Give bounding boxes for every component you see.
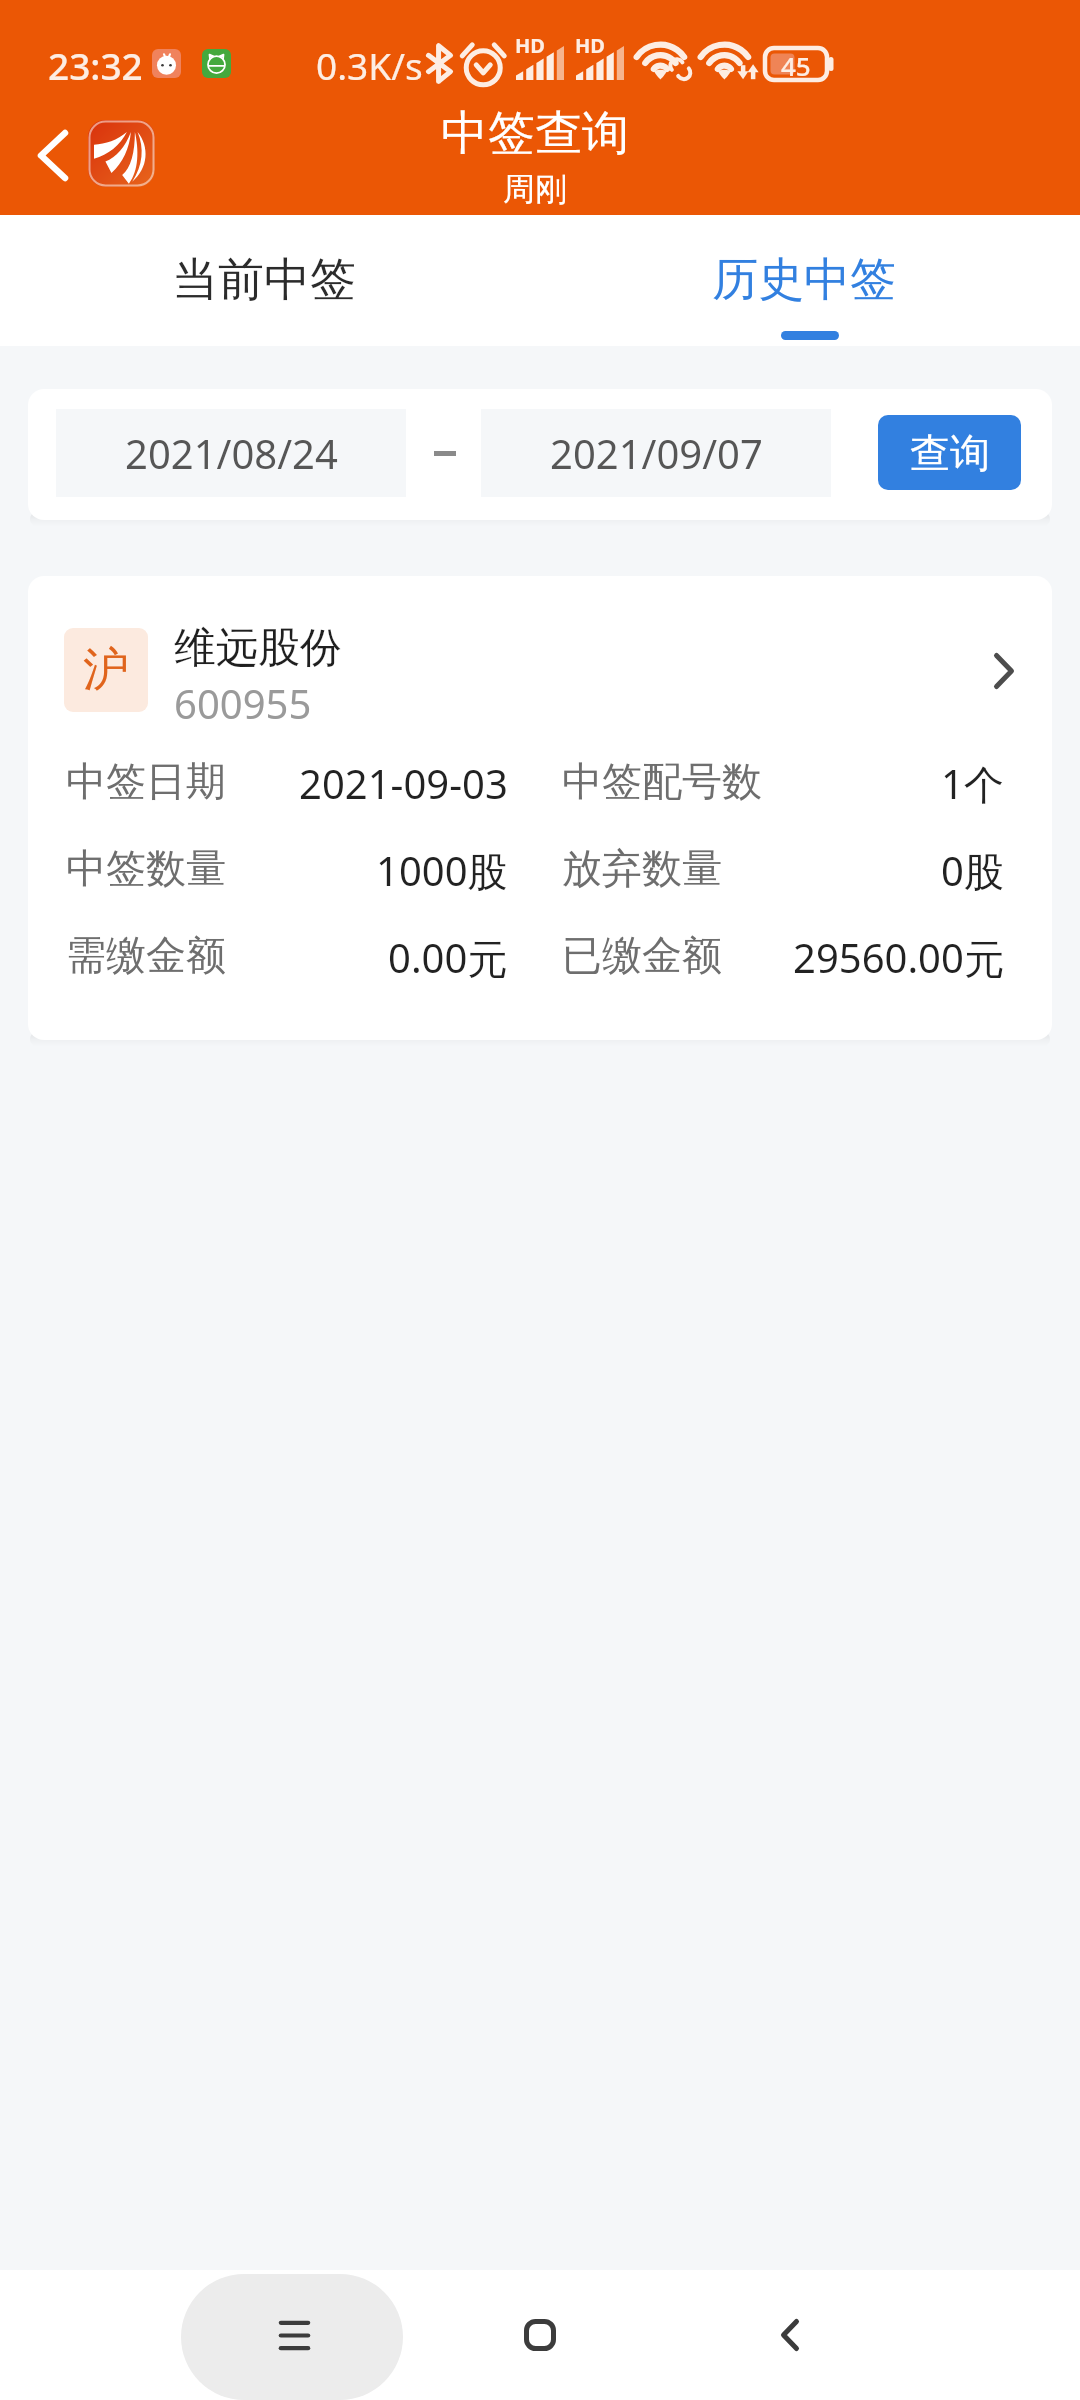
button[interactable]: App logo [88, 120, 155, 187]
button[interactable]: Home [440, 2270, 640, 2400]
staticText: 0.00元 [388, 930, 508, 980]
staticText: HD [575, 32, 605, 59]
staticText: HD [515, 32, 545, 59]
staticText: 中签日期 [66, 756, 226, 806]
staticText: 放弃数量 [562, 843, 722, 893]
button[interactable]: Back [12, 115, 92, 195]
staticText: 历史中签 [712, 251, 896, 309]
staticText: 中签配号数 [562, 756, 762, 806]
staticText: 29560.00元 [793, 930, 1004, 980]
staticText: 周刚 [503, 169, 567, 209]
button[interactable]: 2021/08/24 [56, 409, 406, 497]
staticText: 0.3K/s [316, 40, 423, 90]
staticText: 1个 [941, 756, 1004, 806]
staticText: 23:32 [48, 40, 143, 90]
button[interactable]: 沪 [28, 576, 1052, 1040]
button[interactable]: 历史中签 [540, 215, 1080, 346]
staticText: 中签数量 [66, 843, 226, 893]
staticText: 45 [781, 48, 811, 80]
button[interactable]: Recents [181, 2270, 403, 2400]
staticText: 查询 [910, 428, 990, 478]
staticText: 已缴金额 [562, 930, 722, 980]
staticText: 维远股份 [174, 622, 342, 675]
button[interactable]: 2021/09/07 [481, 409, 831, 497]
staticText: 需缴金额 [66, 930, 226, 980]
button[interactable]: 查询 [878, 415, 1021, 490]
staticText: 中签查询 [441, 104, 629, 163]
staticText: 当前中签 [172, 251, 356, 309]
staticText: 0股 [941, 843, 1004, 893]
staticText: 沪 [83, 641, 129, 699]
staticText: 2021/08/24 [125, 426, 338, 480]
button[interactable]: Details [928, 626, 1020, 718]
staticText: 2021-09-03 [299, 756, 508, 806]
staticText: 600955 [174, 676, 312, 730]
staticText: 2021/09/07 [550, 426, 763, 480]
button[interactable]: 当前中签 [0, 215, 540, 346]
staticText: 1000股 [376, 843, 508, 893]
button[interactable]: Back [690, 2270, 890, 2400]
